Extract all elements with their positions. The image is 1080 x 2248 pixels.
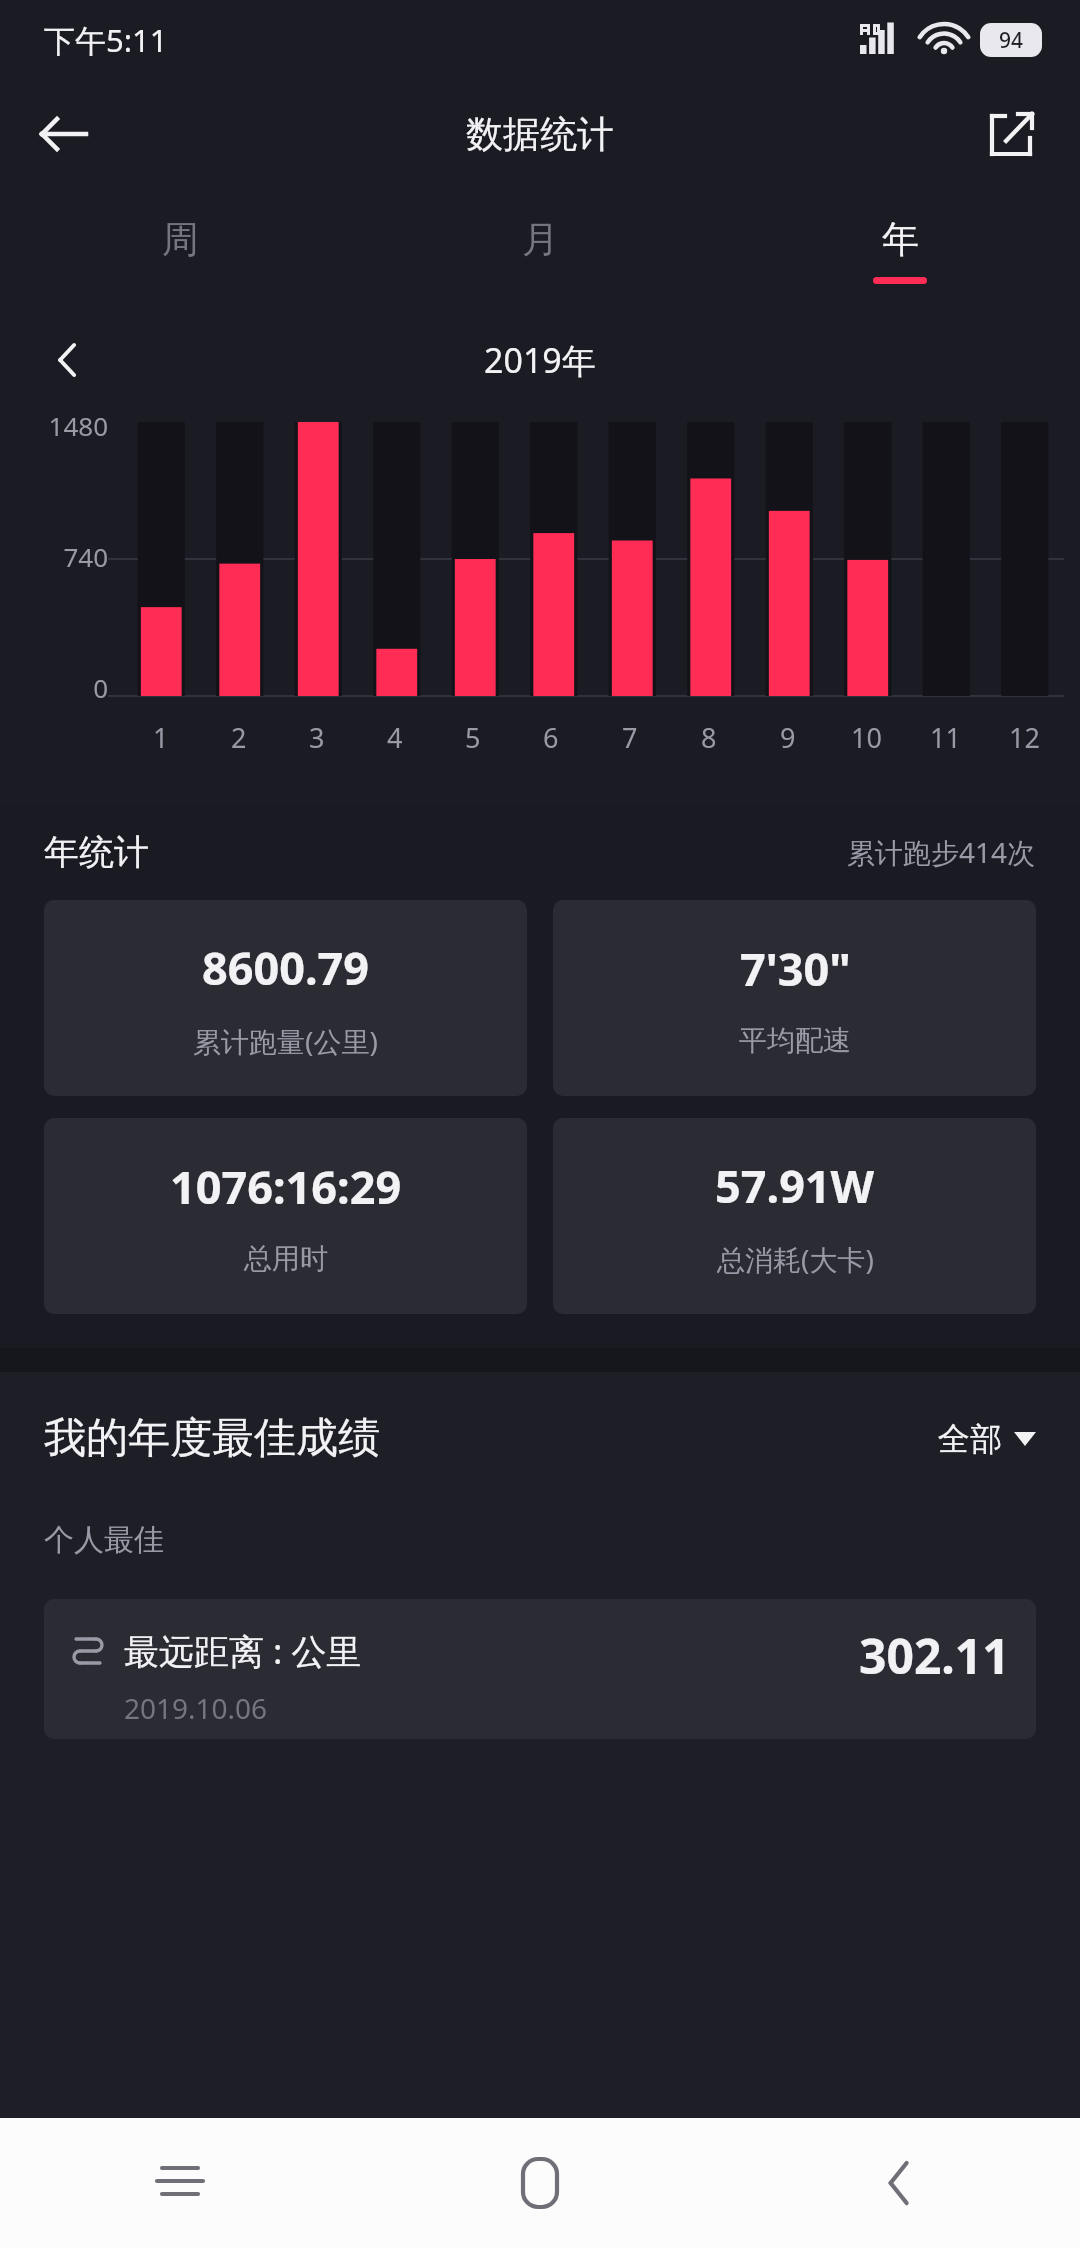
staticText: 94 bbox=[999, 26, 1024, 55]
staticText: 8 bbox=[701, 719, 717, 756]
staticText: 总消耗(大卡) bbox=[717, 1240, 874, 1278]
staticText: 平均配速 bbox=[739, 1023, 851, 1058]
button[interactable]: Home bbox=[360, 2118, 720, 2248]
staticText: 302.11 bbox=[859, 1623, 1010, 1688]
staticText: 月 bbox=[522, 216, 559, 263]
button[interactable]: 最远距离 : 公里 bbox=[44, 1599, 1036, 1739]
button[interactable]: Back bbox=[18, 88, 110, 180]
staticText: 740 bbox=[22, 539, 108, 574]
button[interactable]: 8600.79 bbox=[44, 900, 527, 1096]
staticText: 9 bbox=[780, 719, 796, 756]
button[interactable]: 年 bbox=[720, 188, 1080, 312]
staticText: 最远距离 : 公里 bbox=[124, 1627, 362, 1675]
staticText: 0 bbox=[22, 670, 108, 705]
button[interactable]: Previous year bbox=[28, 318, 112, 402]
staticText: 7 bbox=[622, 719, 638, 756]
staticText: 我的年度最佳成绩 bbox=[44, 1412, 380, 1465]
button[interactable]: 7'30" bbox=[553, 900, 1036, 1096]
staticText: 个人最佳 bbox=[44, 1521, 164, 1559]
staticText: 1480 bbox=[22, 408, 108, 443]
staticText: 12 bbox=[1009, 719, 1040, 756]
staticText: 2 bbox=[231, 719, 247, 756]
button[interactable]: 57.91W bbox=[553, 1118, 1036, 1314]
staticText: 全部 bbox=[938, 1419, 1002, 1459]
button[interactable]: Back bbox=[720, 2118, 1080, 2248]
button[interactable]: 1076:16:29 bbox=[44, 1118, 527, 1314]
staticText: 1076:16:29 bbox=[170, 1156, 402, 1217]
button[interactable]: 周 bbox=[0, 188, 360, 312]
button[interactable]: 月 bbox=[360, 188, 720, 312]
staticText: 6 bbox=[543, 719, 559, 756]
staticText: 57.91W bbox=[715, 1155, 875, 1216]
staticText: 累计跑步414次 bbox=[847, 833, 1036, 871]
staticText: 2019.10.06 bbox=[124, 1689, 268, 1727]
staticText: 7'30" bbox=[740, 938, 851, 999]
staticText: 3 bbox=[309, 719, 325, 756]
button[interactable]: Recent apps bbox=[0, 2118, 360, 2248]
staticText: 5 bbox=[465, 719, 481, 756]
staticText: 1 bbox=[153, 719, 169, 756]
staticText: 2019年 bbox=[484, 337, 596, 383]
button[interactable]: Share bbox=[966, 88, 1058, 180]
staticText: 数据统计 bbox=[466, 111, 614, 158]
staticText: 总用时 bbox=[244, 1241, 328, 1276]
staticText: 年统计 bbox=[44, 830, 149, 874]
staticText: 10 bbox=[851, 719, 882, 756]
staticText: 年 bbox=[882, 216, 919, 263]
staticText: 周 bbox=[162, 216, 199, 263]
staticText: 11 bbox=[930, 719, 961, 756]
staticText: 下午5:11 bbox=[44, 19, 168, 61]
staticText: 4 bbox=[387, 719, 403, 756]
button[interactable]: 全部 bbox=[938, 1419, 1036, 1459]
staticText: 累计跑量(公里) bbox=[193, 1022, 378, 1060]
staticText: 8600.79 bbox=[202, 937, 370, 998]
